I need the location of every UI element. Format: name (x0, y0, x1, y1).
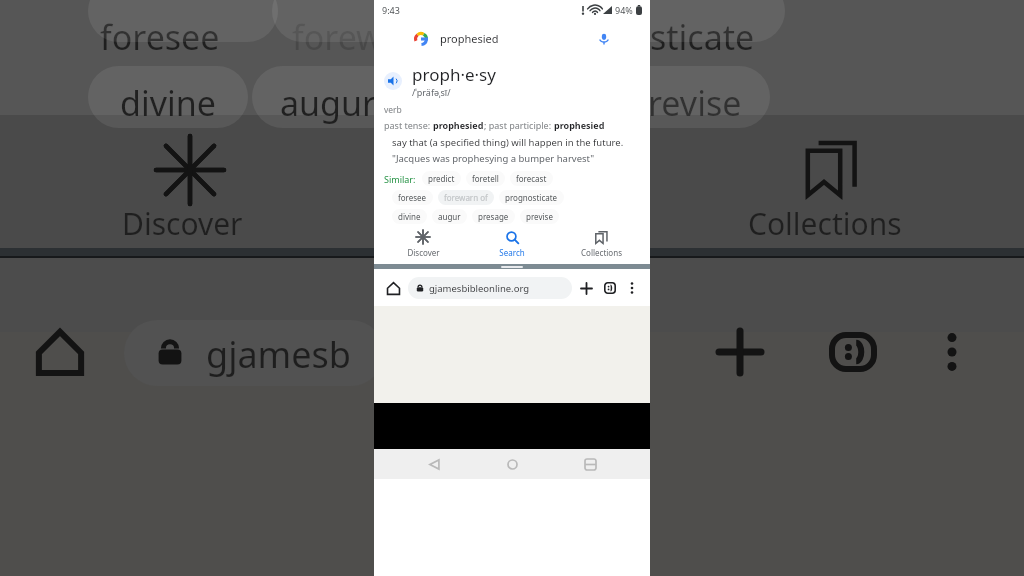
staticText: forecast (516, 173, 547, 184)
staticText: augur (280, 80, 377, 126)
button[interactable]: Back (416, 449, 452, 479)
staticText: forewarn of (444, 192, 488, 203)
staticText: ; past participle: (484, 119, 554, 131)
staticText: 94% (615, 4, 633, 16)
button[interactable]: presage (472, 209, 515, 224)
staticText: "Jacques was prophesying a bumper harves… (392, 152, 595, 165)
button[interactable]: prophesied (404, 24, 620, 53)
staticText: prophesied (554, 119, 605, 131)
staticText: /ˈpräfəˌsī/ (412, 86, 451, 98)
button[interactable]: Home (382, 277, 404, 299)
button[interactable]: Discover (383, 224, 463, 264)
button[interactable]: Home (494, 449, 530, 479)
staticText: gjamesb (206, 330, 351, 379)
button[interactable]: Recent apps (572, 449, 608, 479)
staticText: Collections (581, 247, 622, 258)
staticText: prophesied (440, 31, 499, 46)
staticText: divine (398, 211, 421, 222)
button[interactable]: augur (432, 209, 467, 224)
button[interactable]: Tabs (600, 278, 620, 298)
button[interactable]: previse (520, 209, 559, 224)
button[interactable]: Collections (561, 224, 641, 264)
staticText: gjamesbibleonline.org (429, 282, 530, 295)
staticText: say that (a specified thing) will happen… (392, 136, 624, 149)
staticText: Discover (407, 247, 440, 258)
button[interactable]: predict (422, 171, 461, 186)
button[interactable]: forecast (510, 171, 553, 186)
staticText: revise (648, 80, 742, 126)
staticText: Similar: (384, 173, 416, 185)
staticText: predict (428, 173, 455, 184)
staticText: previse (526, 211, 553, 222)
staticText: foretell (472, 173, 499, 184)
staticText: prophesied (433, 119, 484, 131)
staticText: sticate (650, 14, 755, 60)
staticText: foresee (100, 14, 220, 60)
staticText: foresee (398, 192, 427, 203)
button[interactable]: forewarn of (438, 190, 494, 205)
staticText: prognosticate (505, 192, 558, 203)
button[interactable]: New tab (576, 278, 596, 298)
staticText: past tense: (384, 119, 433, 131)
staticText: forew (292, 14, 383, 60)
staticText: Collections (748, 203, 902, 244)
staticText: augur (438, 211, 461, 222)
button[interactable]: foretell (466, 171, 505, 186)
button[interactable]: More options (622, 278, 642, 298)
staticText: 9:43 (382, 4, 400, 16)
button[interactable]: gjamesbibleonline.org (408, 277, 572, 299)
button[interactable]: divine (392, 209, 427, 224)
staticText: presage (478, 211, 509, 222)
button[interactable]: Search (472, 224, 552, 264)
button[interactable]: prognosticate (499, 190, 564, 205)
staticText: Search (499, 247, 525, 258)
staticText: verb (384, 104, 402, 116)
button[interactable]: Play pronunciation (384, 72, 402, 90)
button[interactable]: foresee (392, 190, 433, 205)
staticText: divine (120, 80, 216, 126)
staticText: Discover (122, 203, 243, 244)
staticText: proph·e·sy (412, 63, 496, 86)
